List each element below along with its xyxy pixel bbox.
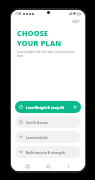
button[interactable]: Home [44,162,53,171]
button[interactable]: SKIP [67,19,85,25]
staticText: CHOOSE [17,28,49,38]
staticText: Get fit & tone [26,120,48,125]
button[interactable]: Back [64,162,73,171]
staticText: YOUR PLAN [17,38,62,48]
button[interactable]: Get fit & tone [15,116,81,128]
staticText: SKIP [72,20,80,24]
staticText: Lose Weight & keep fit [26,105,64,110]
staticText: Build muscle & strength [26,150,65,155]
staticText: Lose weight with the plan that suits you… [17,50,80,58]
button[interactable]: Lose body fat [15,131,81,143]
button[interactable]: Lose Weight & keep fit [15,101,81,113]
button[interactable]: Recents [23,162,32,171]
button[interactable]: Build muscle & strength [15,146,81,158]
staticText: 7:48 [15,12,22,16]
staticText: Lose body fat [26,135,48,140]
